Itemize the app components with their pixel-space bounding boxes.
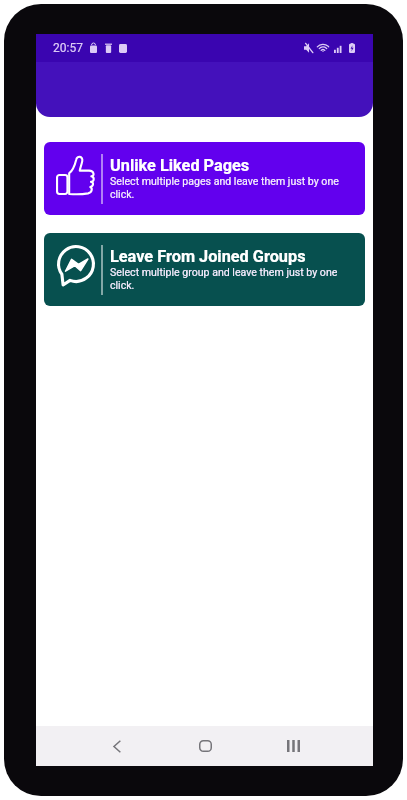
button[interactable]: Home xyxy=(181,726,229,766)
staticText: Select multiple group and leave them jus… xyxy=(110,266,356,292)
staticText: Unlike Liked Pages xyxy=(110,156,250,175)
button[interactable]: Leave From Joined Groups xyxy=(44,233,365,306)
button[interactable]: Recent apps xyxy=(269,726,317,766)
staticText: Select multiple pages and leave them jus… xyxy=(110,175,356,201)
button[interactable]: Back xyxy=(93,726,141,766)
staticText: Leave From Joined Groups xyxy=(110,247,306,266)
button[interactable]: Unlike Liked Pages xyxy=(44,142,365,215)
staticText: 20:57 xyxy=(53,41,83,55)
